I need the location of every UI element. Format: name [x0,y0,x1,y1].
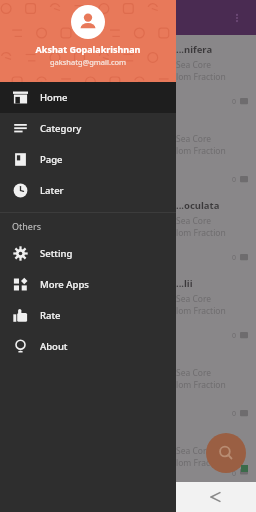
staticText: Setting [40,247,73,260]
button[interactable]: More Apps [0,269,176,300]
staticText: Sea Core [176,133,212,145]
button[interactable]: Sea Core [0,347,256,425]
button[interactable]: Rate [0,300,176,331]
staticText: More Apps [40,278,89,291]
staticText: 0 [232,253,237,263]
staticText: Sea Core [176,215,212,227]
staticText: Sea Core [176,445,212,457]
staticText: ...lii [176,277,193,290]
staticText: 0 [232,331,237,341]
staticText: Page [40,153,63,166]
button[interactable]: Page [0,144,176,175]
staticText: Home [40,91,68,104]
button[interactable]: ...nifera [0,35,256,113]
button[interactable]: Sea Core [0,113,256,191]
staticText: lom Fraction [176,305,226,317]
staticText: lom Fraction [176,145,226,157]
button[interactable]: ...lii [0,269,256,347]
staticText: ...oculata [176,199,220,212]
button[interactable]: Home [0,82,176,113]
staticText: lom Fraction [176,457,226,469]
button[interactable]: Category [0,113,176,144]
staticText: Later [40,184,64,197]
staticText: gakshatg@gmail.com [0,57,176,67]
button[interactable]: About [0,331,176,362]
staticText: Sea Core [176,293,212,305]
button[interactable]: Profile photo [71,5,105,39]
button[interactable]: More options [226,7,248,29]
staticText: 0 [232,175,237,185]
staticText: Sea Core [176,59,212,71]
staticText: Sea Core [176,367,212,379]
button[interactable]: Later [0,175,176,206]
staticText: Akshat Gopalakrishnan [0,43,176,55]
staticText: Category [40,122,82,135]
staticText: About [40,340,68,353]
staticText: Others [12,220,41,232]
staticText: lom Fraction [176,227,226,239]
staticText: Rate [40,309,61,322]
staticText: ...nifera [176,43,213,56]
staticText: lom Fraction [176,71,226,83]
staticText: 0 [232,469,237,476]
staticText: 0 [232,97,237,107]
button[interactable]: ...oculata [0,191,256,269]
staticText: lom Fraction [176,379,226,391]
button[interactable]: Back [171,482,256,512]
button[interactable]: Setting [0,238,176,269]
button[interactable]: Sea Core [0,425,256,482]
button[interactable]: Search [206,433,246,473]
staticText: 0 [232,409,237,419]
